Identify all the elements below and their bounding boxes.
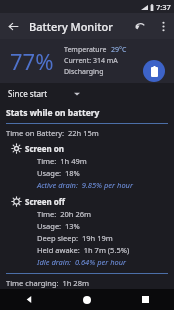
button[interactable]: Back — [0, 289, 58, 310]
staticText: Idle drain: 0.64% per hour — [37, 257, 127, 267]
staticText: Time: 1h 49m — [37, 156, 87, 166]
staticText: Screen off — [25, 196, 65, 207]
staticText: Screen on — [25, 143, 64, 154]
staticText: Held awake: 1h 7m (5.5%) — [37, 245, 130, 255]
staticText: 77% — [10, 46, 54, 76]
button[interactable]: Recent apps — [116, 289, 174, 310]
button[interactable]: Reset statistics — [128, 14, 152, 38]
staticText: Temperature — [64, 45, 107, 55]
staticText: Time: 20h 26m — [37, 209, 92, 219]
button[interactable]: Back — [0, 13, 26, 39]
staticText: Time charging: 1h 28m — [6, 278, 89, 288]
staticText: Deep sleep: 19h 19m — [37, 233, 113, 243]
staticText: Discharging — [64, 67, 104, 77]
staticText: Stats while on battery — [6, 107, 100, 119]
staticText: Battery Monitor — [29, 19, 113, 34]
button[interactable]: Home — [58, 289, 116, 310]
staticText: Time on Battery: 22h 15m — [6, 128, 99, 138]
staticText: 29°C — [111, 45, 127, 55]
button[interactable]: More options — [152, 15, 174, 37]
staticText: Usage: 13% — [37, 221, 80, 231]
button[interactable]: Battery details — [143, 60, 165, 82]
staticText: Since start — [8, 88, 48, 99]
staticText: Current: 314 mA — [64, 56, 118, 66]
staticText: Usage: 18% — [37, 168, 80, 178]
staticText: 7:37 — [156, 2, 171, 12]
staticText: Active drain: 9.85% per hour — [37, 180, 133, 190]
button[interactable]: Since start — [6, 85, 82, 102]
